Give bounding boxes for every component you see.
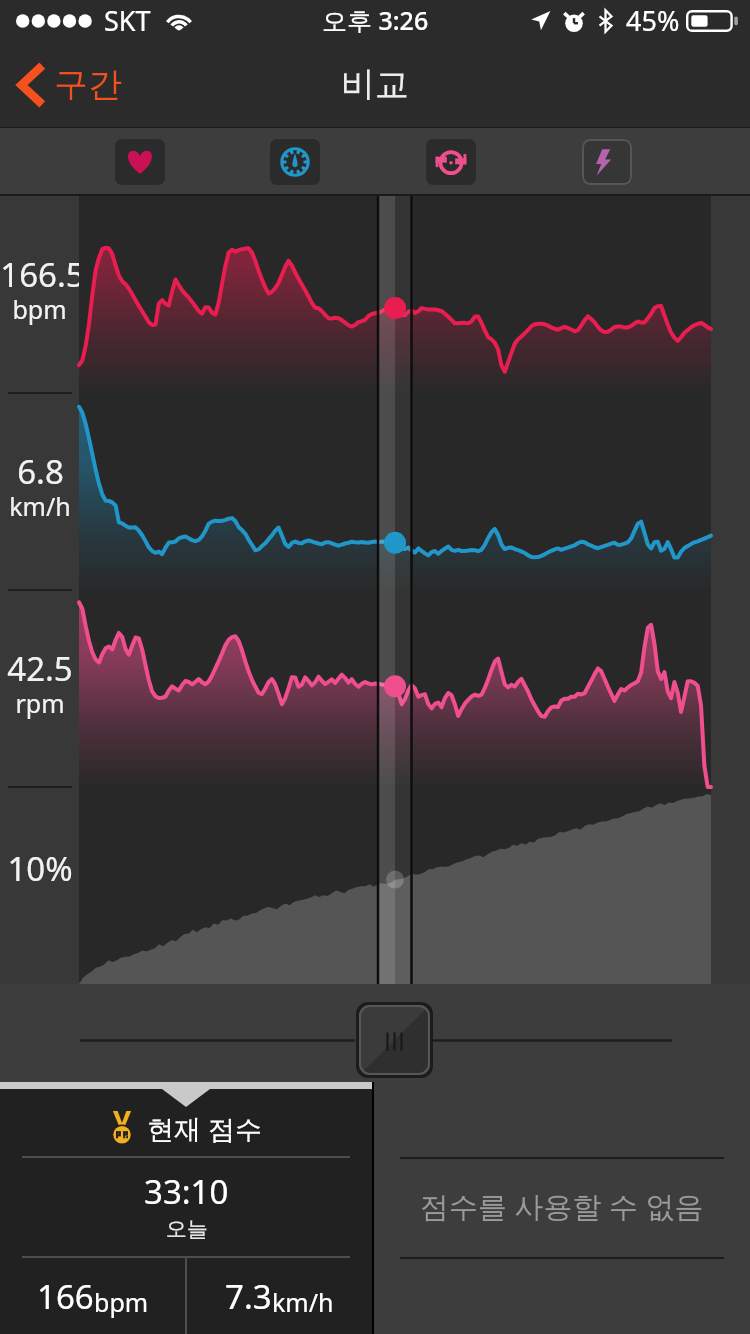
button[interactable]: 점수를 사용할 수 없음 bbox=[374, 1082, 750, 1334]
staticText: 7.3 bbox=[225, 1274, 272, 1319]
staticText: SKT bbox=[104, 2, 151, 39]
staticText: 점수를 사용할 수 없음 bbox=[420, 1186, 704, 1226]
button[interactable]: Cadence bbox=[426, 139, 476, 185]
staticText: 현재 점수 bbox=[147, 1110, 263, 1147]
button[interactable]: Speed bbox=[270, 139, 320, 185]
button[interactable]: Power bbox=[582, 139, 632, 185]
button[interactable]: 구간 bbox=[0, 53, 142, 116]
button[interactable]: 현재 점수 bbox=[0, 1082, 372, 1334]
staticText: 비교 bbox=[341, 63, 409, 106]
staticText: bpm bbox=[94, 1285, 149, 1319]
staticText: 오늘 bbox=[166, 1216, 208, 1242]
button[interactable]: Heart rate bbox=[115, 139, 165, 185]
staticText: 오후 3:26 bbox=[322, 3, 429, 37]
staticText: 구간 bbox=[54, 63, 122, 106]
staticText: bpm bbox=[12, 292, 67, 326]
button[interactable]: Scrubber handle bbox=[356, 1002, 433, 1078]
staticText: 6.8 bbox=[17, 449, 64, 494]
staticText: km/h bbox=[272, 1285, 334, 1319]
staticText: km/h bbox=[9, 489, 71, 523]
staticText: 45% bbox=[626, 2, 680, 39]
staticText: 33:10 bbox=[144, 1169, 229, 1214]
staticText: 166.5 bbox=[0, 252, 79, 297]
staticText: 166 bbox=[37, 1274, 94, 1319]
staticText: 42.5 bbox=[7, 646, 73, 691]
staticText: 10% bbox=[7, 846, 73, 891]
staticText: rpm bbox=[15, 686, 65, 720]
